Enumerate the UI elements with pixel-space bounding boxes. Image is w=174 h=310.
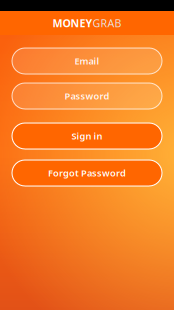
staticText: Email [74,55,99,67]
button[interactable]: Sign in [12,123,162,149]
staticText: Forgot Password [48,167,126,179]
staticText: Sign in [71,130,102,142]
staticText: MONEY [52,16,92,30]
staticText: GRAB [92,16,121,30]
staticText: Password [64,90,109,102]
button[interactable]: Email [12,48,162,74]
button[interactable]: Forgot Password [12,160,162,186]
button[interactable]: Password [12,83,162,109]
